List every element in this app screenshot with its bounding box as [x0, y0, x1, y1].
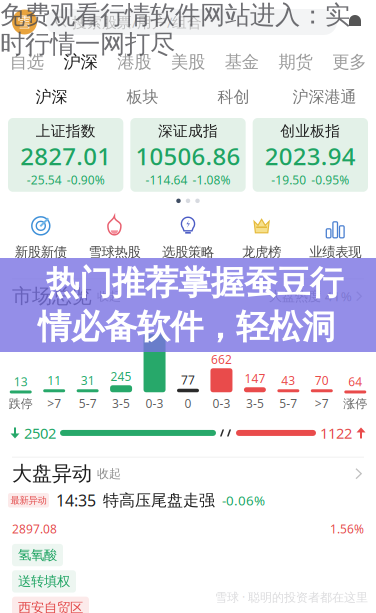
staticText: 收起 [97, 289, 121, 303]
staticText: 市场总览 [12, 284, 92, 308]
staticText: 5-7 [79, 395, 97, 411]
staticText: 沪深 [35, 87, 67, 107]
staticText: 大盘异动 [12, 461, 92, 486]
staticText: 深证成指 [158, 122, 218, 140]
button[interactable]: 港股 [107, 44, 161, 80]
staticText: 业绩表现 [309, 244, 361, 260]
staticText: -19.50 [271, 172, 306, 188]
staticText: 选股策略 [162, 244, 214, 260]
staticText: 收起 [97, 466, 121, 481]
button[interactable]: 上证指数 [8, 118, 123, 192]
button[interactable]: 大盘异动 [0, 458, 376, 490]
button[interactable]: 更多 [322, 44, 376, 80]
staticText: 热门推荐掌握蚕豆行 [46, 262, 343, 303]
staticText: 43 [281, 372, 295, 388]
button[interactable]: 自选 [0, 44, 54, 80]
staticText: 2827.01 [20, 140, 111, 172]
button[interactable]: 沪深港通 [279, 80, 370, 114]
button[interactable]: 美股 [161, 44, 215, 80]
button[interactable]: 业绩表现 [298, 214, 372, 260]
staticText: 板块 [126, 87, 158, 107]
staticText: 5-7 [279, 395, 297, 411]
staticText: -25.54 [27, 172, 62, 188]
staticText: 2023.94 [265, 140, 356, 172]
staticText: 14:35 [56, 490, 96, 511]
staticText: 1.56% [330, 521, 364, 537]
staticText: -0.06% [222, 491, 265, 509]
staticText: 港股 [117, 51, 151, 73]
staticText: 最新异动 [10, 495, 46, 506]
button[interactable]: 期货 [269, 44, 322, 80]
staticText: 70 [315, 372, 329, 388]
staticText: 662 [211, 351, 232, 367]
staticText: 创业板指 [280, 122, 340, 140]
staticText: -114.64 [145, 172, 187, 188]
button[interactable]: 沪深 [54, 44, 107, 80]
staticText: 10506.86 [135, 140, 240, 172]
staticText: 0-3 [145, 395, 163, 411]
staticText: 3-5 [112, 395, 130, 411]
staticText: 特高压尾盘走强 [103, 490, 215, 510]
staticText: -0.90% [67, 172, 105, 188]
staticText: 13 [14, 373, 28, 389]
button[interactable]: 大盘热度 [269, 287, 364, 305]
staticText: 沪深港通 [292, 87, 356, 107]
staticText: 3-5 [246, 395, 264, 411]
staticText: 大盘热度 [269, 288, 321, 304]
button[interactable]: 深证成指 [130, 118, 246, 192]
staticText: 雪球 · 聪明的投资者都在这里 [215, 589, 368, 605]
button[interactable]: 西安自贸区 [12, 597, 89, 613]
button[interactable]: 氢氧酸 [12, 544, 63, 566]
staticText: 31 [81, 372, 95, 388]
staticText: >7 [47, 395, 61, 411]
staticText: 新股新债 [15, 244, 67, 260]
button[interactable]: Notifications [346, 13, 364, 31]
staticText: 基金 [225, 51, 259, 73]
staticText: 西安自贸区 [18, 600, 83, 613]
staticText: 77 [181, 372, 195, 388]
staticText: 雪 [17, 13, 32, 31]
staticText: 科创 [217, 87, 249, 107]
staticText: 上证指数 [36, 122, 96, 140]
staticText: 245 [111, 368, 132, 384]
staticText: 涨停 [343, 396, 367, 411]
button[interactable]: 基金 [215, 44, 269, 80]
button[interactable]: 创业板指 [253, 118, 368, 192]
staticText: >7 [315, 395, 329, 411]
staticText: 雪球热股 [88, 244, 140, 260]
button[interactable]: 新股新债 [4, 214, 78, 260]
button[interactable]: 雪球热股 [78, 214, 151, 260]
staticText: 跌停 [9, 396, 33, 411]
staticText: 41% [325, 287, 352, 305]
button[interactable]: 龙虎榜 [225, 214, 298, 260]
staticText: 2897.08 [12, 521, 57, 537]
button[interactable]: 板块 [97, 80, 188, 114]
button[interactable]: Profile [12, 9, 37, 34]
staticText: 免费观看行情软件网站进入：实 [0, 0, 350, 30]
staticText: 64 [348, 373, 362, 389]
button[interactable]: 搜索股票/用户/组合 [46, 9, 337, 35]
staticText: 送转填权 [18, 573, 70, 590]
staticText: 0-3 [212, 395, 230, 411]
staticText: 更多 [332, 51, 366, 73]
staticText: -1.08% [192, 172, 230, 188]
staticText: 0 [184, 395, 191, 411]
staticText [153, 317, 156, 333]
button[interactable]: 沪深 [6, 80, 97, 114]
staticText: 147 [244, 370, 265, 386]
staticText: 期货 [278, 51, 312, 73]
staticText: 搜索股票/用户/组合 [72, 12, 202, 32]
staticText: -0.95% [311, 172, 349, 188]
staticText: 1122 [320, 423, 352, 443]
staticText: 11 [47, 372, 61, 388]
button[interactable]: 送转填权 [12, 570, 76, 593]
staticText: 时行情一网打尽 [0, 28, 175, 59]
button[interactable]: 科创 [188, 80, 279, 114]
staticText: 沪深 [64, 51, 98, 73]
staticText: 氢氧酸 [18, 547, 57, 563]
staticText: 情必备软件，轻松洞 [38, 306, 335, 347]
button[interactable]: 选股策略 [151, 214, 225, 260]
staticText: 龙虎榜 [242, 244, 281, 260]
staticText: 美股 [171, 51, 205, 73]
staticText: 自选 [10, 51, 44, 73]
